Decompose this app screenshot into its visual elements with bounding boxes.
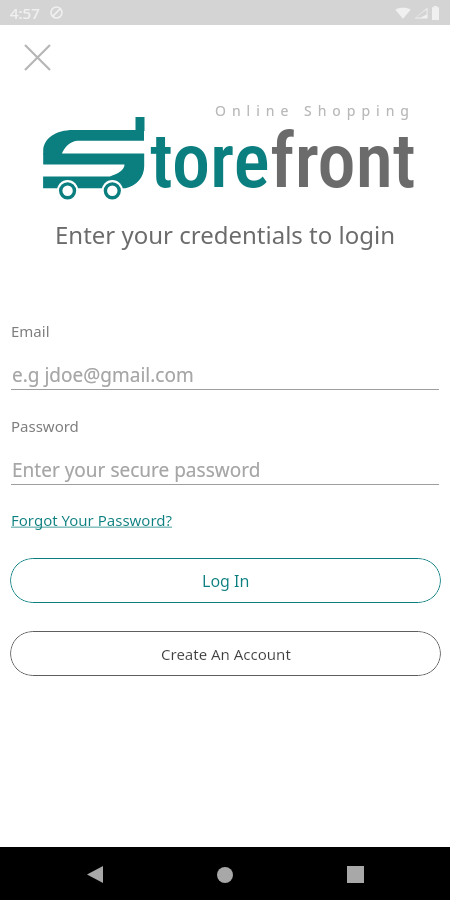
- staticText: 4:57: [10, 3, 40, 23]
- button[interactable]: Forgot Your Password?: [11, 510, 173, 530]
- staticText: Email: [11, 321, 50, 341]
- staticText: Password: [11, 416, 79, 436]
- button[interactable]: Recent apps: [325, 847, 385, 900]
- button[interactable]: Log In: [10, 558, 441, 603]
- button[interactable]: Create An Account: [10, 631, 441, 676]
- button[interactable]: Close: [12, 32, 62, 82]
- button[interactable]: Back: [65, 847, 125, 900]
- staticText: tore: [150, 116, 270, 205]
- staticText: front: [270, 116, 416, 205]
- staticText: Enter your secure password: [12, 457, 261, 483]
- staticText: e.g jdoe@gmail.com: [12, 362, 194, 388]
- button[interactable]: Home: [195, 847, 255, 900]
- staticText: Create An Account: [161, 644, 291, 664]
- staticText: Log In: [202, 570, 250, 592]
- staticText: Enter your credentials to login: [0, 218, 450, 251]
- staticText: Forgot Your Password?: [11, 510, 173, 530]
- staticText: Online Shopping: [215, 101, 415, 120]
